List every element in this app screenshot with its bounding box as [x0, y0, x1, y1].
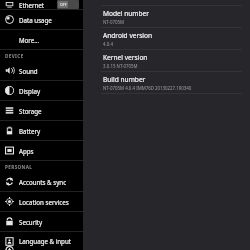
button[interactable]: Display [0, 81, 83, 100]
button[interactable]: Ethernet [0, 0, 83, 9]
staticText: Battery [19, 127, 41, 135]
staticText: 4.0.4 [103, 41, 113, 47]
button[interactable]: More… [0, 30, 83, 49]
staticText: DEVICE [5, 53, 24, 59]
staticText: OFF [60, 2, 67, 7]
staticText: NT-0705M [103, 19, 125, 25]
staticText: Language & input [19, 237, 71, 245]
button[interactable]: Battery [0, 121, 83, 140]
button[interactable]: Storage [0, 101, 83, 120]
button[interactable]: Language & input [0, 232, 83, 250]
staticText: NT-0705M 4.0.4 IMM76D 20130227.190340 [103, 85, 192, 91]
staticText: Data usage [19, 16, 52, 24]
button[interactable]: Apps [0, 141, 83, 160]
button[interactable]: Data usage [0, 10, 83, 29]
button[interactable]: Kernel version [83, 50, 250, 71]
staticText: PERSONAL [5, 164, 33, 170]
staticText: Sound [19, 67, 38, 75]
staticText: Display [19, 87, 41, 95]
staticText: Security [19, 218, 43, 226]
staticText: Model number [103, 9, 149, 18]
staticText: Ethernet [19, 1, 45, 9]
staticText: More… [19, 36, 40, 44]
button[interactable]: Model number [83, 6, 250, 27]
button[interactable]: Sound [0, 61, 83, 80]
button[interactable]: Location services [0, 192, 83, 211]
staticText: Build number [103, 75, 146, 84]
button[interactable]: Ethernet off [57, 0, 79, 9]
button[interactable]: Security [0, 212, 83, 231]
staticText: 3.0.15 NT-0705M [103, 63, 138, 69]
staticText: Location services [19, 198, 69, 206]
button[interactable]: Accounts & sync [0, 172, 83, 191]
staticText: Android version [103, 31, 153, 40]
staticText: Kernel version [103, 53, 148, 62]
staticText: Storage [19, 107, 42, 115]
staticText: Accounts & sync [19, 178, 67, 186]
staticText: Apps [19, 147, 34, 155]
button[interactable]: Build number [83, 72, 250, 93]
button[interactable]: Android version [83, 28, 250, 49]
